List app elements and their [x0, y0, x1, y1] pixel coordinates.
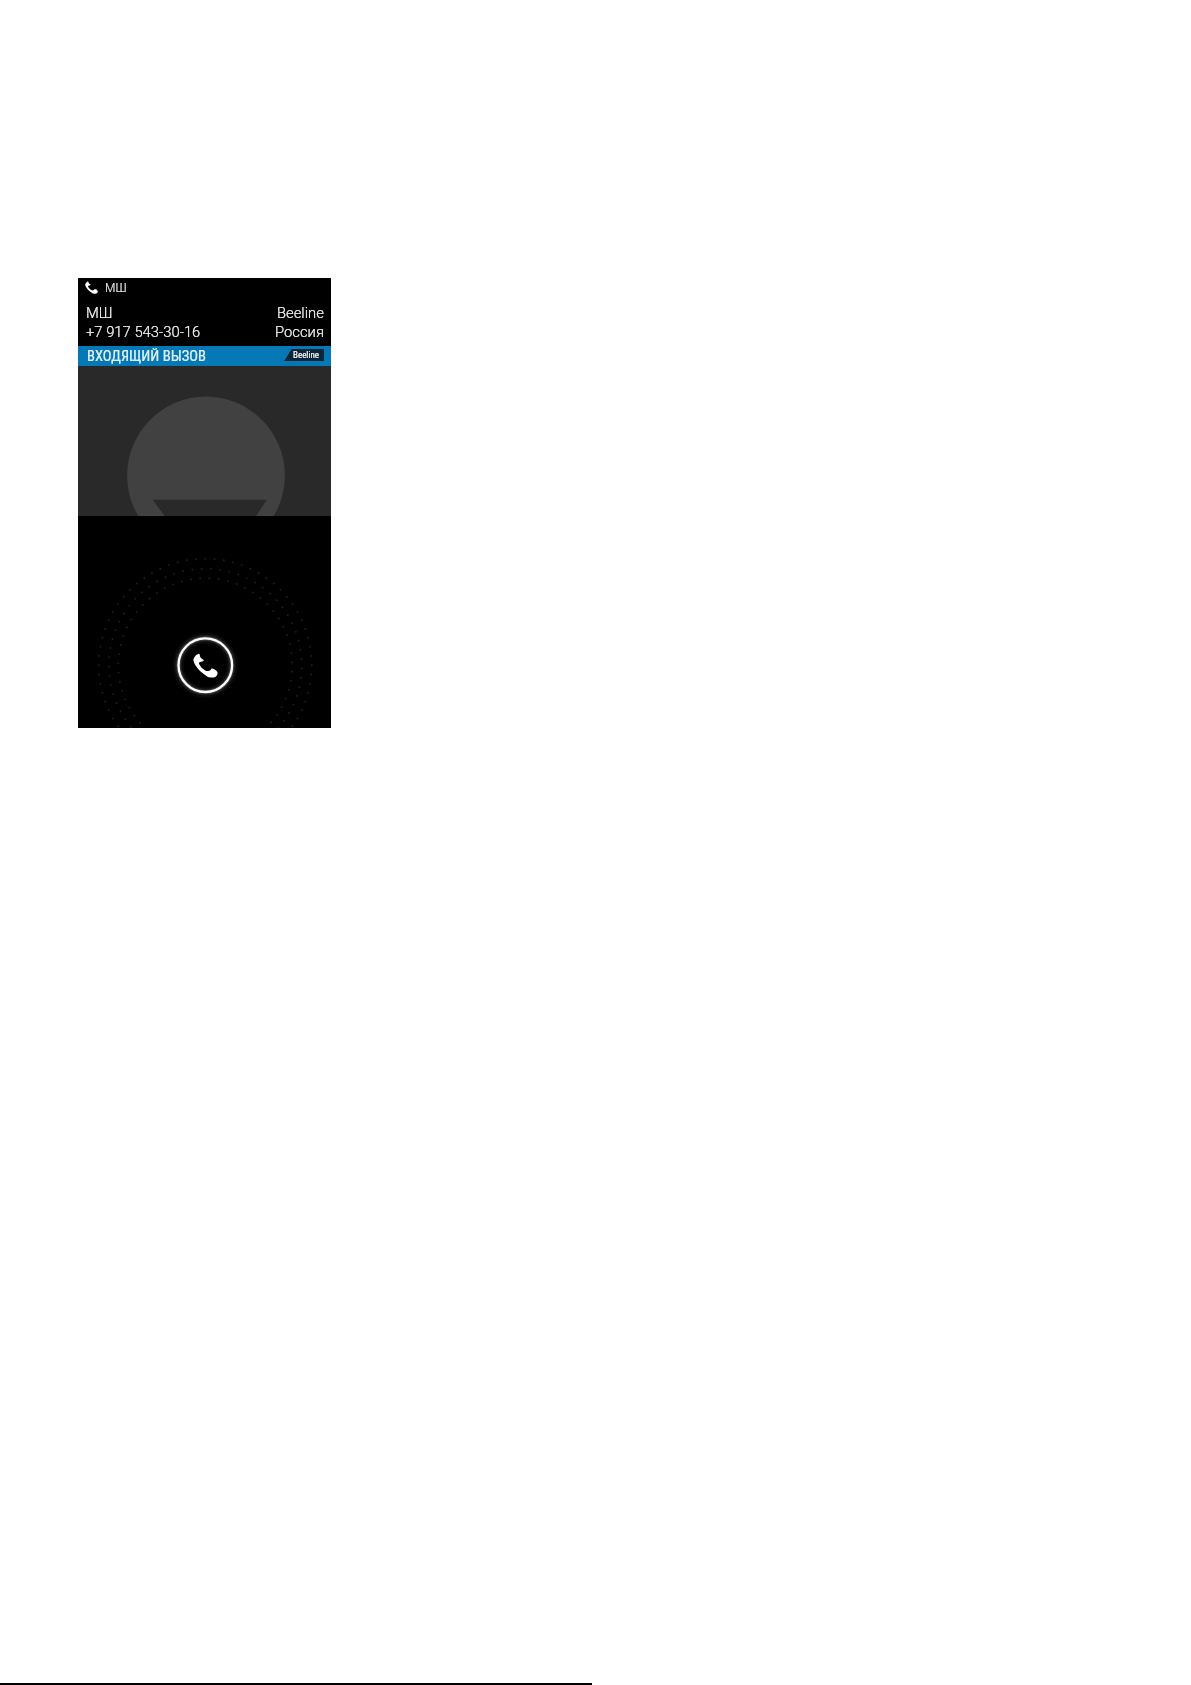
- button[interactable]: ВХОДЯЩИЙ ВЫЗОВ: [78, 346, 331, 366]
- button[interactable]: [78, 366, 331, 516]
- staticText: МШ: [105, 281, 127, 295]
- staticText: МШ: [86, 304, 113, 321]
- staticText: Россия: [275, 323, 324, 340]
- staticText: ВХОДЯЩИЙ ВЫЗОВ: [87, 348, 206, 365]
- button[interactable]: МШ: [78, 299, 331, 346]
- staticText: Beeline: [293, 350, 320, 361]
- staticText: Beeline: [277, 304, 324, 321]
- other: Ongoing call: [85, 281, 98, 294]
- button[interactable]: Answer call: [177, 637, 233, 693]
- staticText: +7 917 543-30-16: [86, 323, 201, 340]
- button[interactable]: Ongoing call: [78, 278, 331, 299]
